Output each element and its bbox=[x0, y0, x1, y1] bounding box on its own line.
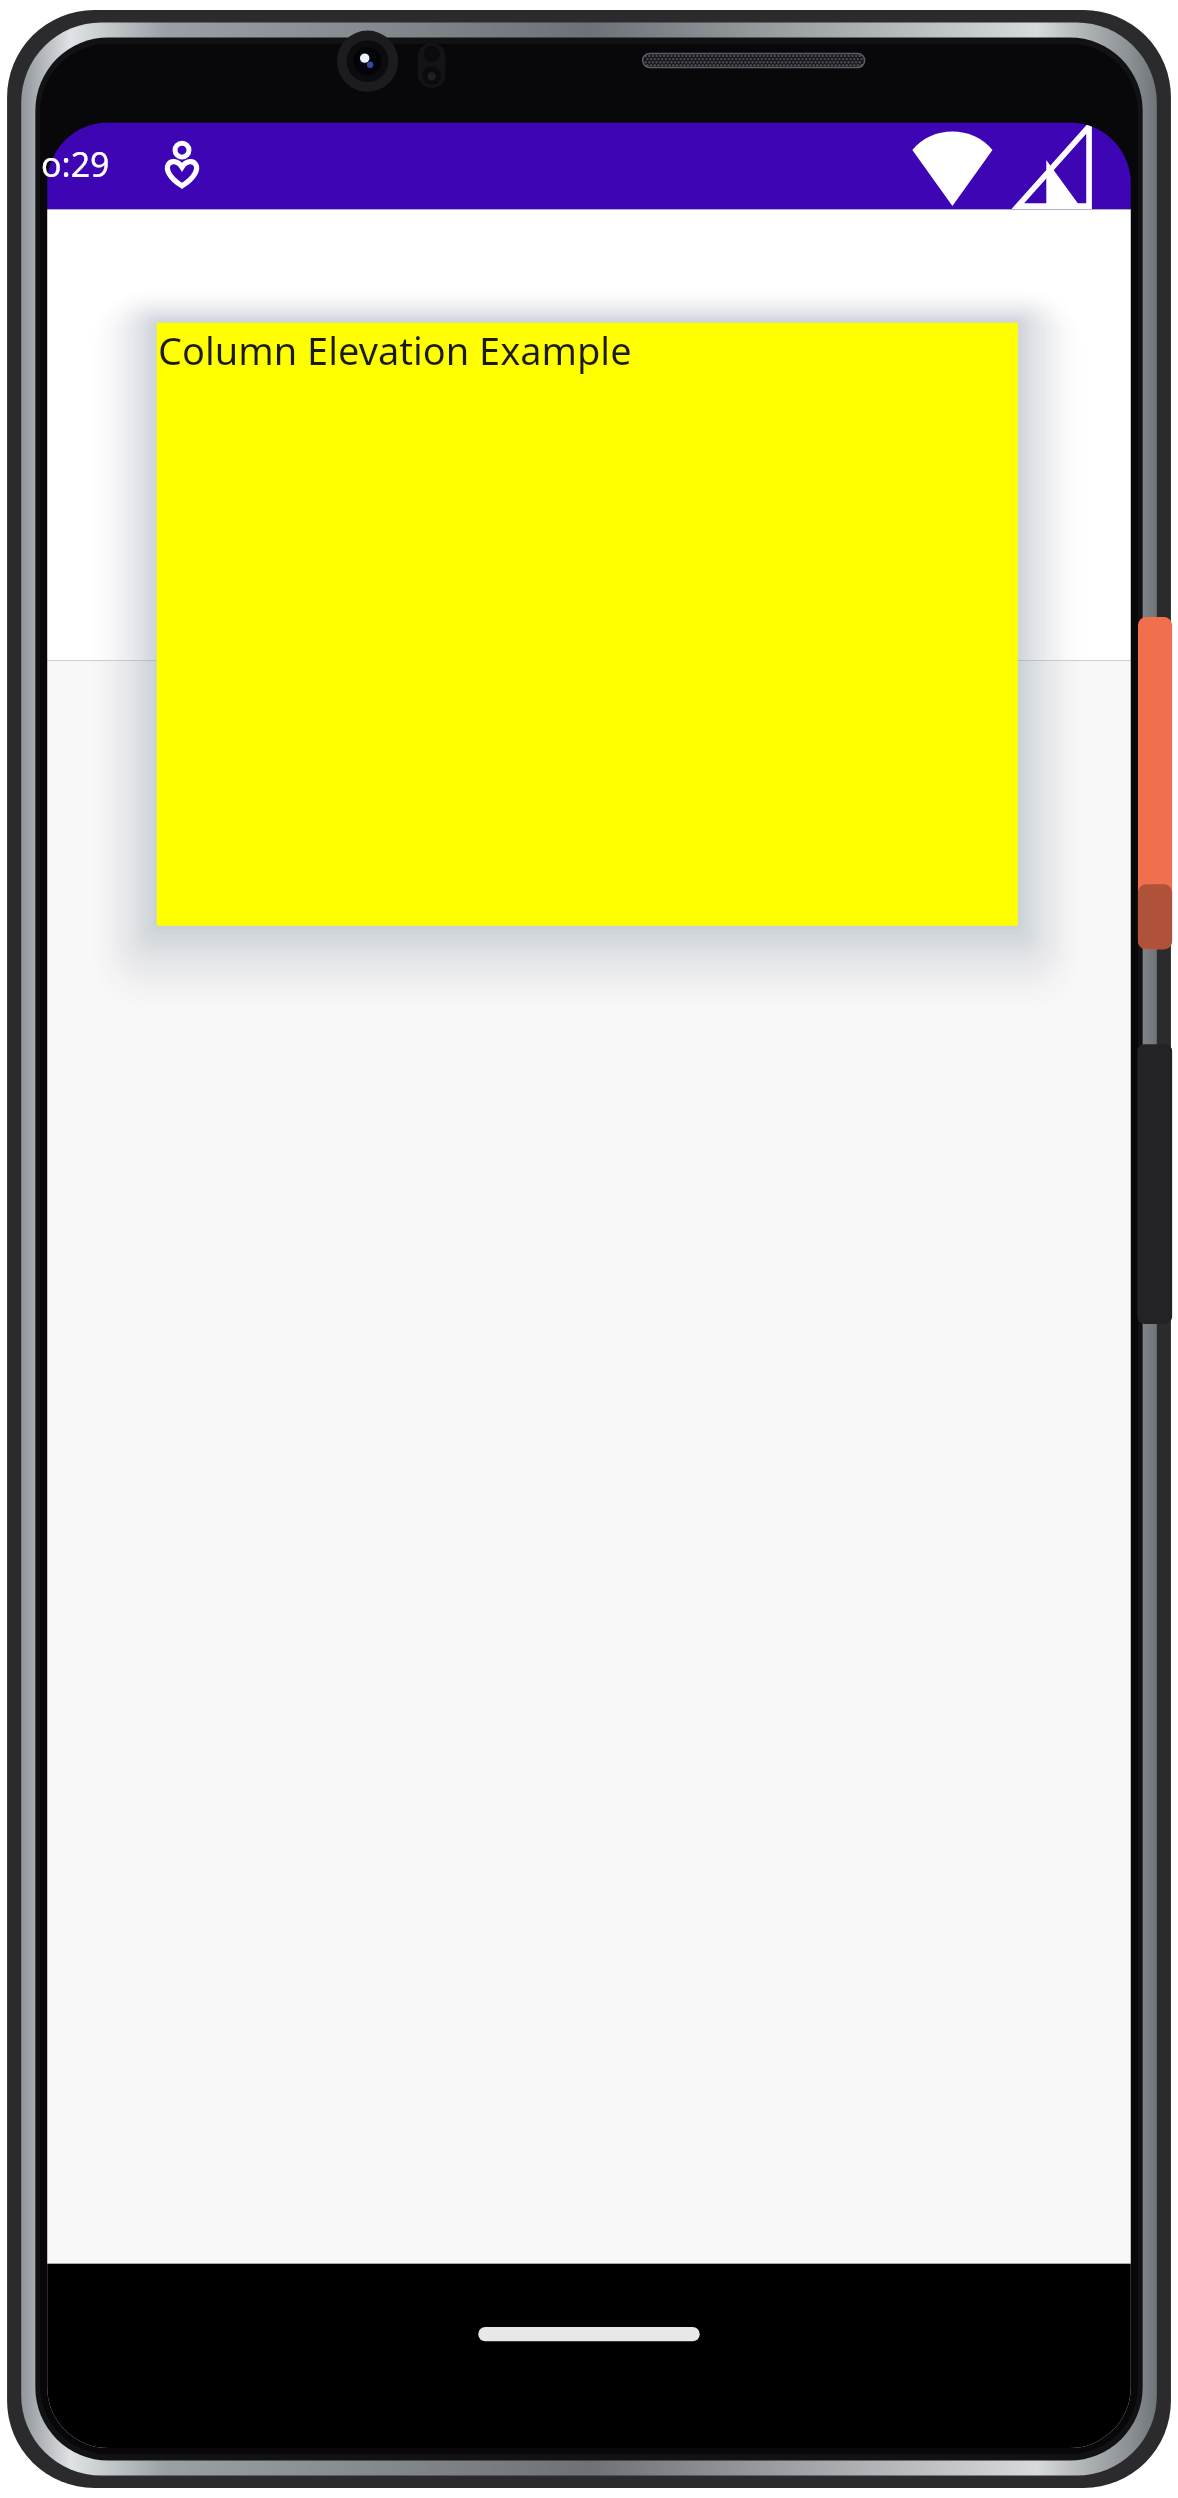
staticText: o:29 bbox=[41, 141, 110, 187]
staticText: Column Elevation Example bbox=[158, 324, 632, 376]
button[interactable]: Column Elevation Example bbox=[158, 324, 1018, 927]
button[interactable]: Clock bbox=[41, 141, 182, 191]
